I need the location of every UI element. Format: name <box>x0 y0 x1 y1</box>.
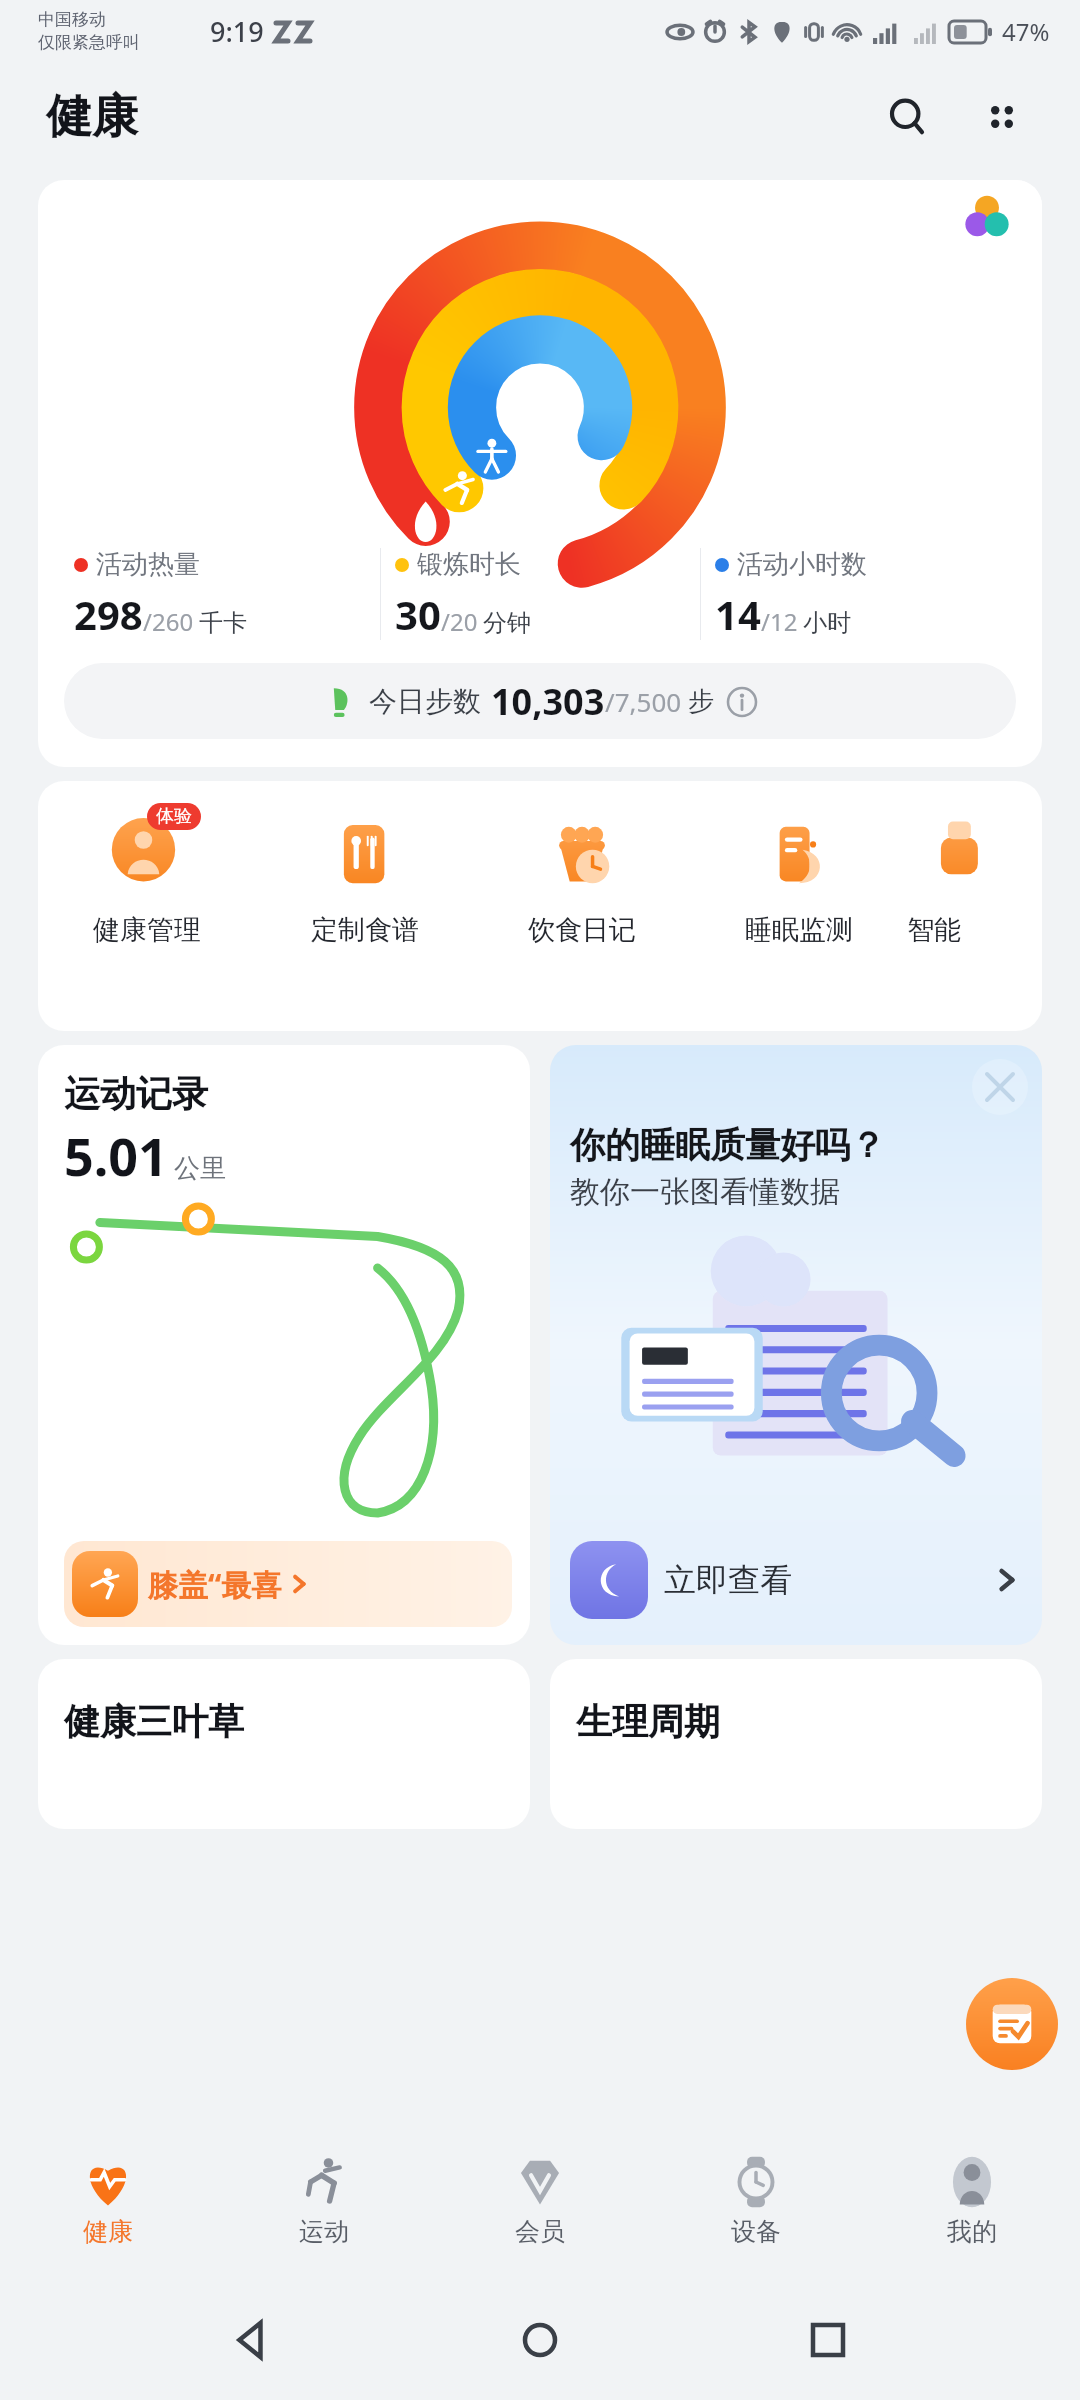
button[interactable]: Health insights <box>932 180 1042 252</box>
staticText: /7,500 <box>605 684 682 719</box>
staticText: 你的睡眠质量好吗？ <box>570 1123 885 1167</box>
button[interactable]: More options <box>966 81 1038 153</box>
staticText: 我的 <box>947 2216 997 2247</box>
button[interactable]: 饮食日记 <box>473 807 690 1031</box>
staticText: 教你一张图看懂数据 <box>570 1173 840 1211</box>
staticText: 运动记录 <box>64 1071 208 1116</box>
staticText: 活动小时数 <box>737 548 867 581</box>
button[interactable]: 会员 <box>432 2120 648 2280</box>
staticText: 14 <box>715 587 761 641</box>
button[interactable]: Close <box>972 1059 1028 1115</box>
button[interactable]: Close <box>550 1045 1042 1645</box>
staticText: 健康管理 <box>93 913 201 947</box>
staticText: 膝盖“最喜 <box>148 1564 282 1605</box>
button[interactable]: 我的 <box>864 2120 1080 2280</box>
staticText: 锻炼时长 <box>417 548 521 581</box>
button[interactable]: 活动热量 <box>38 180 1042 767</box>
staticText: 智能 <box>907 913 961 947</box>
staticText: 睡眠监测 <box>745 913 853 947</box>
button[interactable]: 健康三叶草 <box>38 1659 530 1829</box>
staticText: 步 <box>688 685 714 718</box>
staticText: 30 <box>395 587 441 641</box>
staticText: 中国移动 <box>38 9 106 30</box>
staticText: 仅限紧急呼叫 <box>38 32 140 53</box>
button[interactable]: Back <box>218 2305 288 2375</box>
staticText: 定制食谱 <box>311 913 419 947</box>
button[interactable]: 睡眠监测 <box>690 807 907 1031</box>
staticText: 千卡 <box>199 608 247 638</box>
button[interactable]: Record health data <box>966 1978 1058 2070</box>
staticText: 饮食日记 <box>528 913 636 947</box>
staticText: 今日步数 <box>369 684 481 719</box>
staticText: 健康三叶草 <box>64 1699 244 1744</box>
staticText: 小时 <box>803 608 851 638</box>
button[interactable]: 体验 <box>38 807 256 1031</box>
staticText: /20 <box>441 605 478 638</box>
staticText: 健康 <box>83 2216 133 2247</box>
staticText: 47% <box>1002 15 1050 48</box>
button[interactable]: Search <box>872 81 944 153</box>
staticText: 运动 <box>299 2216 349 2247</box>
staticText: 健康 <box>46 88 138 146</box>
staticText: 立即查看 <box>664 1560 792 1600</box>
button[interactable]: Home <box>505 2305 575 2375</box>
staticText: 设备 <box>731 2216 781 2247</box>
button[interactable]: 生理周期 <box>550 1659 1042 1829</box>
staticText: 分钟 <box>483 608 531 638</box>
button[interactable]: 膝盖“最喜 <box>64 1541 512 1627</box>
staticText: 会员 <box>515 2216 565 2247</box>
staticText: 10,303 <box>491 677 605 726</box>
button[interactable]: 运动 <box>216 2120 432 2280</box>
button[interactable]: 今日步数 <box>64 663 1016 739</box>
staticText: 生理周期 <box>576 1699 720 1744</box>
staticText: /260 <box>143 605 194 638</box>
button[interactable]: 定制食谱 <box>256 807 473 1031</box>
button[interactable]: 运动记录 <box>38 1045 530 1645</box>
staticText: 活动热量 <box>96 548 200 581</box>
staticText: /12 <box>761 605 798 638</box>
button[interactable]: 设备 <box>648 2120 864 2280</box>
button[interactable]: 健康 <box>0 2120 216 2280</box>
button[interactable]: Recents <box>793 2305 863 2375</box>
staticText: 公里 <box>174 1152 226 1185</box>
staticText: 体验 <box>156 805 192 828</box>
staticText: 298 <box>74 587 143 641</box>
staticText: 9:19 <box>210 13 264 50</box>
staticText: 5.01 <box>64 1120 168 1191</box>
button[interactable]: 智能 <box>907 807 1042 1031</box>
